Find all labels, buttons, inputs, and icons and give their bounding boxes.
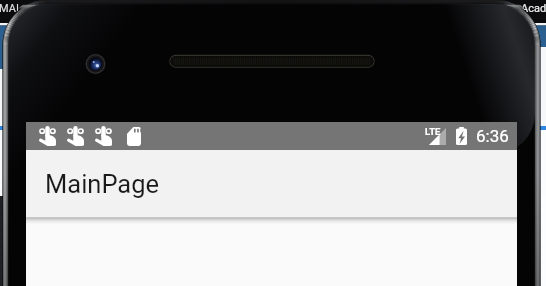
button[interactable]: MainPage (26, 150, 517, 217)
staticText: 6:36 (476, 126, 509, 146)
staticText: Acad (521, 2, 546, 15)
staticText: MAI (0, 2, 19, 15)
staticText: LTE (425, 126, 441, 137)
staticText: MainPage (45, 169, 160, 199)
